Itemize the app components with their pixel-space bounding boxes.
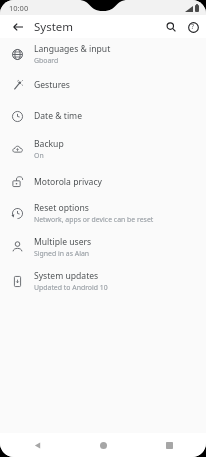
button[interactable]: Gestures: [0, 70, 206, 100]
staticText: 10:00: [9, 3, 29, 13]
staticText: Multiple users: [34, 236, 92, 248]
staticText: Motorola privacy: [34, 176, 102, 188]
staticText: Updated to Android 10: [34, 283, 108, 292]
staticText: Backup: [34, 138, 64, 150]
button[interactable]: Reset options: [0, 197, 206, 229]
button[interactable]: Home: [93, 435, 113, 455]
button[interactable]: Help: [184, 18, 202, 36]
staticText: Languages & input: [34, 43, 111, 55]
button[interactable]: Back: [27, 435, 47, 455]
staticText: Network, apps or device can be reset: [34, 215, 154, 224]
staticText: Signed in as Alan: [34, 249, 90, 258]
staticText: Gboard: [34, 56, 59, 65]
button[interactable]: Backup: [0, 132, 206, 166]
button[interactable]: Date & time: [0, 100, 206, 132]
button[interactable]: Multiple users: [0, 229, 206, 264]
staticText: On: [34, 151, 44, 160]
staticText: System: [34, 19, 74, 35]
button[interactable]: Search: [162, 18, 180, 36]
button[interactable]: Back: [9, 18, 26, 35]
staticText: Gestures: [34, 79, 70, 91]
staticText: Date & time: [34, 110, 83, 122]
staticText: ?: [191, 22, 195, 32]
button[interactable]: Languages & input: [0, 38, 206, 70]
button[interactable]: System updates: [0, 264, 206, 298]
staticText: System updates: [34, 270, 99, 282]
button[interactable]: Motorola privacy: [0, 166, 206, 197]
button[interactable]: Recents: [159, 435, 179, 455]
staticText: Reset options: [34, 202, 89, 214]
